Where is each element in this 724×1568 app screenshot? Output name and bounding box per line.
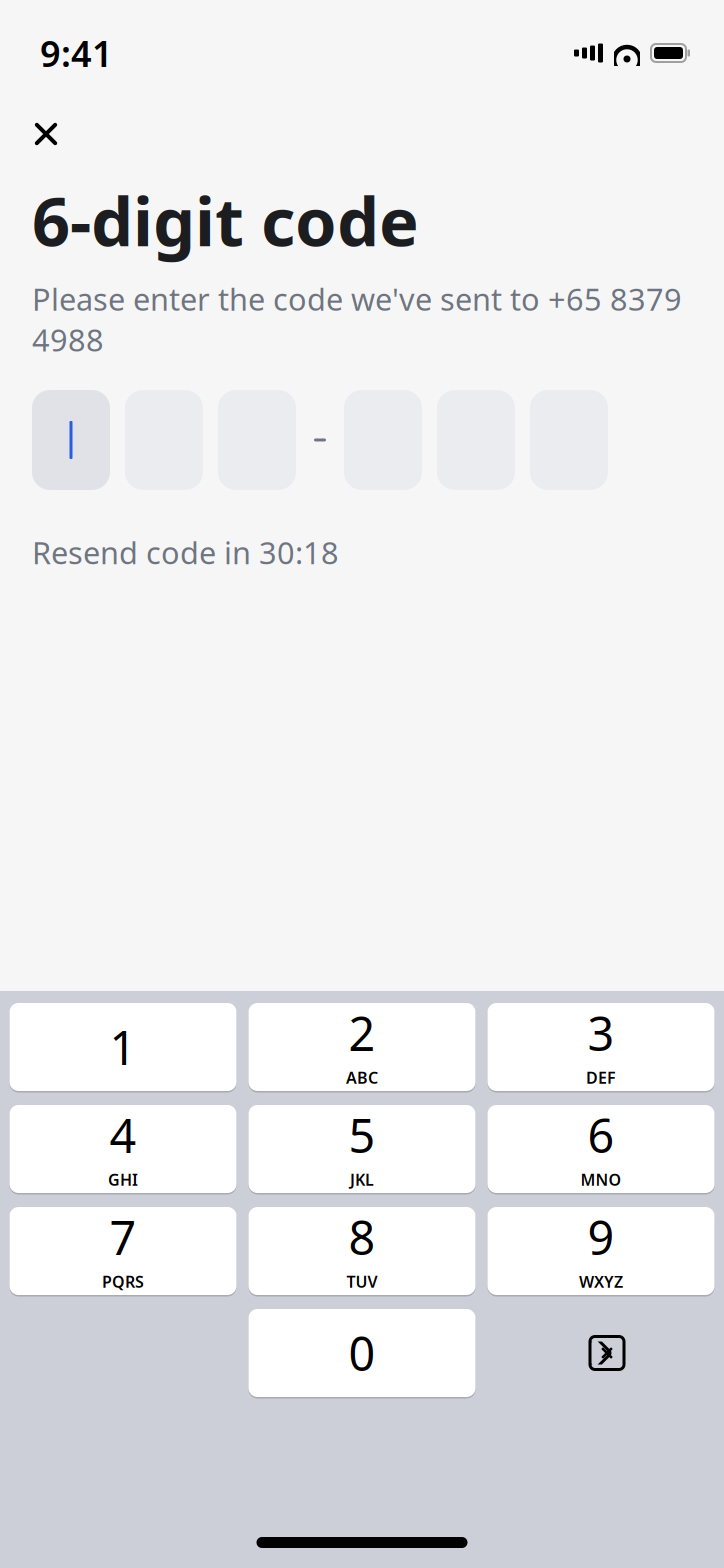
staticText: DEF bbox=[586, 1067, 616, 1088]
button[interactable]: 5 bbox=[248, 1105, 475, 1193]
staticText: WXYZ bbox=[579, 1271, 623, 1292]
staticText: 5 bbox=[348, 1104, 375, 1166]
staticText: GHI bbox=[108, 1169, 138, 1190]
button[interactable]: 2 bbox=[248, 1003, 475, 1091]
button[interactable]: 1 bbox=[9, 1003, 236, 1091]
button[interactable]: 4 bbox=[9, 1105, 236, 1193]
staticText: 4 bbox=[109, 1104, 136, 1166]
button[interactable]: Code digit 1 bbox=[32, 390, 110, 490]
button[interactable]: 7 bbox=[9, 1207, 236, 1295]
staticText: JKL bbox=[350, 1169, 374, 1190]
staticText: 9 bbox=[587, 1206, 614, 1268]
button[interactable]: 0 bbox=[248, 1309, 475, 1397]
button[interactable]: Close bbox=[20, 108, 72, 160]
staticText: 0 bbox=[348, 1322, 375, 1384]
staticText: 6 bbox=[587, 1104, 614, 1166]
button[interactable]: 3 bbox=[487, 1003, 714, 1091]
staticText: 7 bbox=[109, 1206, 136, 1268]
staticText: 1 bbox=[109, 1016, 136, 1078]
staticText: Resend code in 30:18 bbox=[32, 532, 339, 573]
staticText: ABC bbox=[346, 1067, 378, 1088]
staticText: PQRS bbox=[102, 1271, 144, 1292]
staticText: 9:41 bbox=[40, 29, 113, 77]
button[interactable]: 6 bbox=[487, 1105, 714, 1193]
button[interactable]: 9 bbox=[487, 1207, 714, 1295]
staticText: 2 bbox=[348, 1002, 375, 1064]
button[interactable]: Delete bbox=[487, 1309, 714, 1397]
staticText: TUV bbox=[346, 1271, 377, 1292]
staticText: 6-digit code bbox=[32, 176, 419, 264]
staticText: MNO bbox=[580, 1169, 621, 1190]
staticText: 8 bbox=[348, 1206, 375, 1268]
button[interactable]: 8 bbox=[248, 1207, 475, 1295]
staticText: Please enter the code we've sent to +65 … bbox=[32, 278, 682, 360]
staticText: 3 bbox=[587, 1002, 614, 1064]
